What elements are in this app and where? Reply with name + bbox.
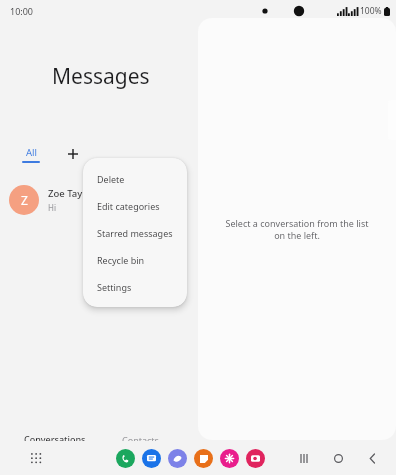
button[interactable]: Add category: [62, 143, 84, 165]
staticText: Select a conversation from the list on t…: [210, 217, 384, 242]
button[interactable]: Phone: [116, 449, 135, 468]
staticText: All: [26, 146, 37, 159]
button[interactable]: Recent apps: [294, 448, 314, 468]
button[interactable]: Conversations: [22, 433, 88, 448]
button[interactable]: Starred messages: [83, 219, 187, 246]
button[interactable]: Internet: [168, 449, 187, 468]
staticText: Zoe Taylor: [48, 187, 95, 200]
button[interactable]: Edit categories: [83, 192, 187, 219]
staticText: Delete: [97, 173, 125, 185]
button[interactable]: Gallery: [220, 449, 239, 468]
button[interactable]: Notes: [194, 449, 213, 468]
button[interactable]: Settings: [83, 273, 187, 300]
button[interactable]: Recycle bin: [83, 246, 187, 273]
button[interactable]: All: [18, 144, 44, 165]
staticText: Hi: [48, 202, 56, 213]
staticText: Edit categories: [97, 200, 160, 212]
staticText: Settings: [97, 281, 132, 293]
button[interactable]: Camera: [246, 449, 265, 468]
button[interactable]: Delete: [83, 165, 187, 192]
button[interactable]: Contacts: [118, 431, 163, 449]
staticText: 10:00: [10, 5, 34, 17]
button[interactable]: Home: [328, 448, 348, 468]
staticText: Z: [21, 192, 28, 208]
staticText: Recycle bin: [97, 254, 145, 266]
staticText: 100%: [360, 5, 382, 17]
button[interactable]: All apps: [26, 448, 46, 468]
button[interactable]: Back: [362, 448, 382, 468]
staticText: Starred messages: [97, 227, 173, 239]
button[interactable]: Z: [0, 179, 198, 221]
button[interactable]: Messages: [142, 449, 161, 468]
staticText: Contacts: [122, 434, 159, 446]
staticText: Conversations: [24, 433, 86, 445]
staticText: Messages: [52, 62, 150, 91]
